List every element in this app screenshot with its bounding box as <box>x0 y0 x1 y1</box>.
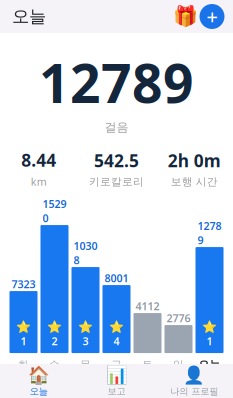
button[interactable]: 📊 <box>78 364 155 398</box>
staticText: 4112 <box>135 299 159 313</box>
staticText: 2776 <box>166 311 190 325</box>
button[interactable]: Rewards <box>173 4 197 28</box>
button[interactable]: 👤 <box>155 364 233 398</box>
staticText: 12789 <box>39 47 194 118</box>
staticText: 12789 <box>197 219 221 247</box>
staticText: 수 <box>49 358 60 371</box>
staticText: ⭐ <box>47 320 62 334</box>
staticText: 1 <box>20 334 26 348</box>
staticText: 8001 <box>104 271 128 285</box>
staticText: 👤 <box>183 365 205 385</box>
staticText: 화 <box>18 358 29 371</box>
button[interactable]: Add <box>197 1 227 31</box>
staticText: 금 <box>111 358 122 371</box>
staticText: 일일 평균: 8657 <box>73 379 159 395</box>
staticText: ⭐ <box>78 320 93 334</box>
staticText: 📊 <box>105 365 127 385</box>
staticText: ⭐ <box>16 320 31 334</box>
staticText: 목 <box>80 358 91 371</box>
staticText: 일 <box>173 358 184 371</box>
staticText: 나의 프로필 <box>170 386 218 397</box>
staticText: ⭐ <box>109 320 124 334</box>
staticText: 3 <box>82 334 88 348</box>
staticText: 오늘 <box>198 358 220 371</box>
staticText: 10308 <box>73 239 97 267</box>
staticText: 걸음 <box>104 120 128 134</box>
staticText: 7323 <box>11 277 35 291</box>
staticText: ⭐ <box>202 320 217 334</box>
staticText: km <box>31 175 47 189</box>
staticText: 2h 0m <box>168 149 221 172</box>
staticText: 8.44 <box>21 149 56 172</box>
staticText: 🎁 <box>172 5 197 28</box>
staticText: 🏠 <box>28 365 50 385</box>
staticText: 보고 <box>107 386 125 397</box>
staticText: 보행 시간 <box>171 175 218 188</box>
staticText: 1 <box>206 334 212 348</box>
staticText: 토 <box>142 358 153 371</box>
staticText: 2 <box>51 334 57 348</box>
staticText: 키로칼로리 <box>89 175 144 188</box>
staticText: 오늘 <box>30 386 48 397</box>
staticText: 4 <box>113 334 119 348</box>
staticText: 542.5 <box>94 149 139 172</box>
button[interactable]: 🏠 <box>0 364 78 398</box>
staticText: + <box>206 3 217 30</box>
staticText: 15290 <box>42 197 66 225</box>
staticText: 오늘 <box>12 6 46 27</box>
